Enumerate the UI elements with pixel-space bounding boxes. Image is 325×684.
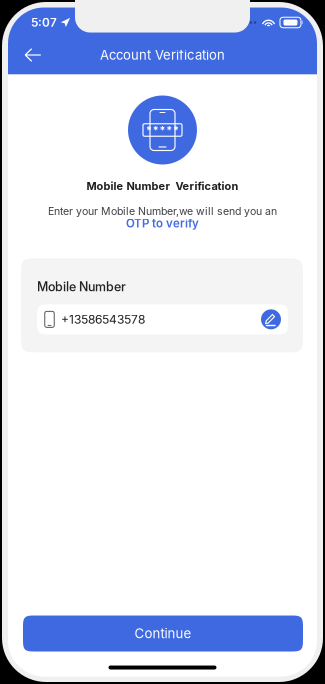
staticText: OTP to verify xyxy=(126,216,199,230)
staticText: * xyxy=(146,123,152,136)
staticText: * xyxy=(166,123,172,136)
button[interactable]: +13586543578 xyxy=(37,304,288,334)
staticText: Enter your Mobile Number,we will send yo… xyxy=(48,205,277,217)
staticText: * xyxy=(153,123,159,136)
staticText: +13586543578 xyxy=(61,312,145,327)
staticText: * xyxy=(173,123,179,136)
button[interactable]: Back xyxy=(18,40,48,70)
staticText: * xyxy=(159,123,165,136)
staticText: Continue xyxy=(134,625,191,641)
staticText: Mobile Number xyxy=(37,279,126,294)
button[interactable]: Continue xyxy=(23,615,303,651)
staticText: Mobile Number Verification xyxy=(86,179,238,193)
staticText: Account Verification xyxy=(100,47,225,63)
button[interactable]: OTP to verify xyxy=(126,216,199,230)
staticText: 5:07 xyxy=(31,15,57,30)
